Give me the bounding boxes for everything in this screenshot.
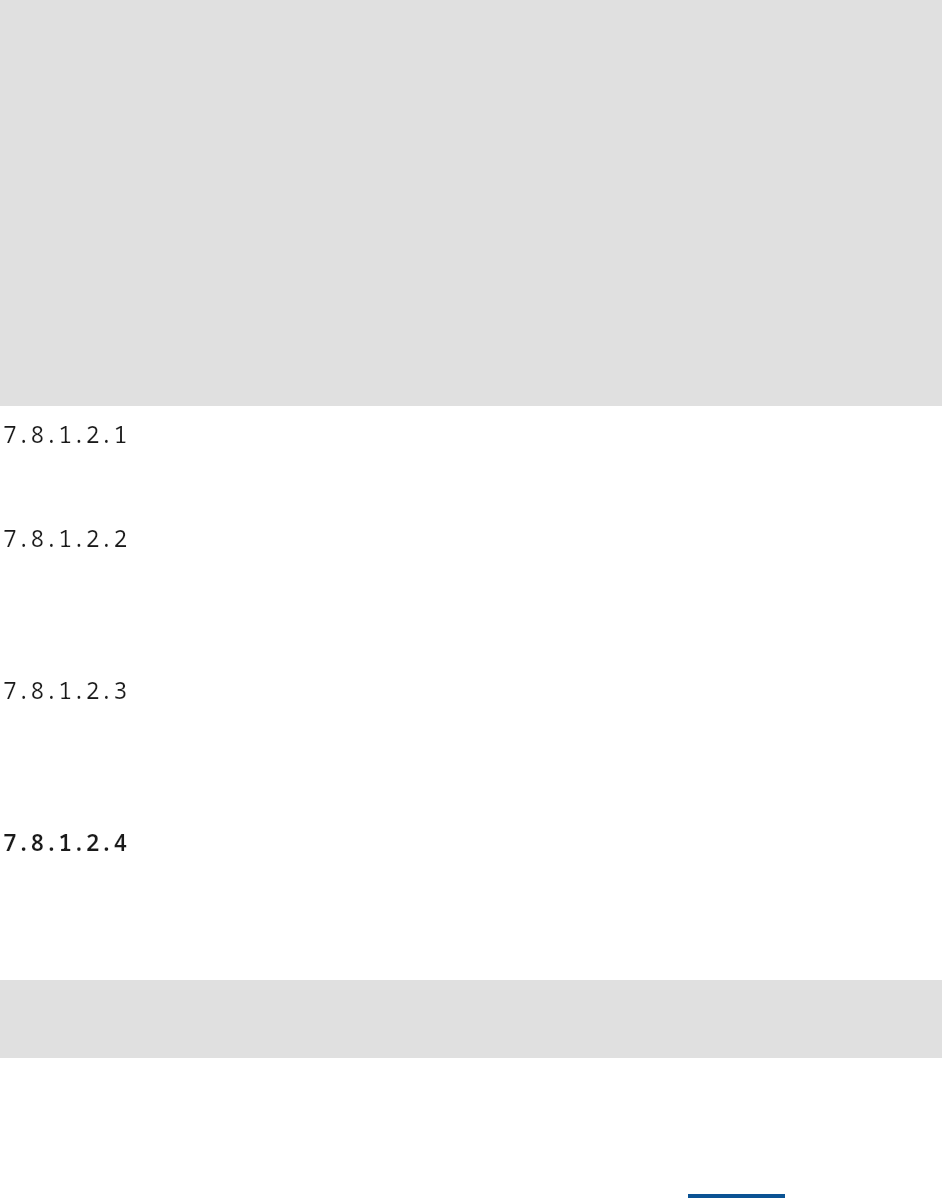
staticText: 7.8.1.2.4 <box>3 826 128 856</box>
button[interactable]: 7.8.1.2.4 <box>3 826 143 856</box>
staticText: 7.8.1.2.2 <box>3 522 128 552</box>
button[interactable]: 7.8.1.2.3 <box>3 674 143 704</box>
staticText: 7.8.1.2.1 <box>3 418 128 448</box>
button[interactable]: 7.8.1.2.1 <box>3 418 143 448</box>
button[interactable]: 7.8.1.2.2 <box>3 522 143 552</box>
staticText: 7.8.1.2.3 <box>3 674 128 704</box>
